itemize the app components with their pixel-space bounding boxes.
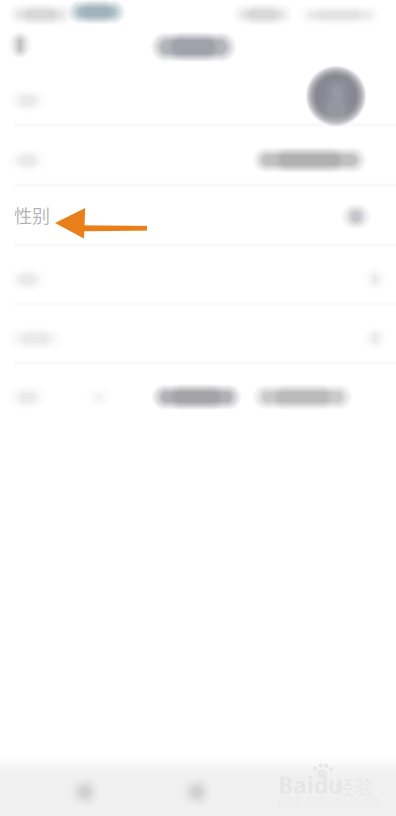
button[interactable]: 性别 <box>0 185 396 244</box>
staticText: Baidu <box>278 770 343 800</box>
button[interactable]: 昵称 <box>0 125 396 185</box>
button[interactable]: Back <box>0 24 41 66</box>
button[interactable]: Home tab <box>48 767 122 816</box>
button[interactable]: Profile tab <box>160 767 234 816</box>
button[interactable]: 签名 <box>0 363 396 421</box>
staticText: 性别 <box>14 202 50 228</box>
staticText: 经验 <box>335 772 373 799</box>
button[interactable]: 头像 <box>0 64 396 124</box>
